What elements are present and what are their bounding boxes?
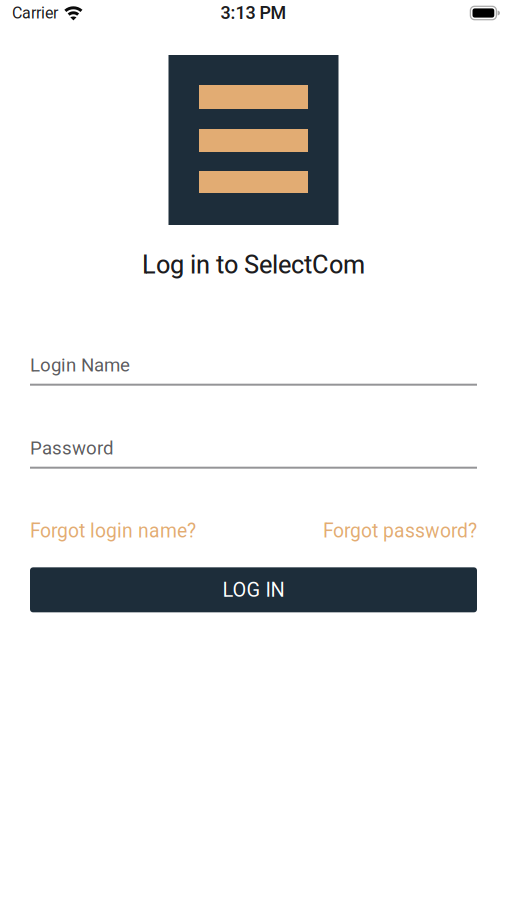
staticText: LOG IN (222, 578, 284, 601)
button[interactable]: Forgot login name? (30, 520, 196, 542)
staticText: Password (30, 437, 114, 459)
button[interactable]: Password (30, 439, 477, 469)
staticText: Log in to SelectCom (142, 250, 365, 280)
button[interactable]: LOG IN (30, 567, 477, 612)
button[interactable]: Forgot password? (323, 520, 477, 542)
staticText: Forgot login name? (30, 520, 196, 542)
button[interactable]: Login Name (30, 356, 477, 386)
staticText: Login Name (30, 354, 130, 376)
staticText: 3:13 PM (220, 2, 286, 23)
staticText: Carrier (12, 4, 58, 22)
staticText: Forgot password? (323, 520, 477, 542)
